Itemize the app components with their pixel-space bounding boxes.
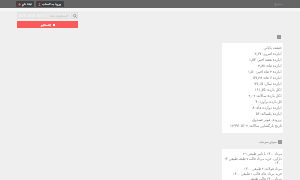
staticText: خرید مرداد های قالب ۱ طبیعی ۱۴۰۰	[232, 171, 282, 175]
staticText: جستجوی نماد	[50, 14, 68, 18]
staticText: کل بازده برآورد: ۴	[255, 99, 282, 104]
staticText: ورودی موثر صندوق:	[252, 117, 282, 122]
staticText: بازده سال: ۷۷٫۱۵٪	[254, 81, 282, 86]
button[interactable]: ثبت نام	[16, 1, 34, 7]
staticText: بازده دوازده ماه: ۸٪	[252, 105, 282, 110]
staticText: جستجو	[41, 23, 52, 27]
staticText: مرداد فولادی ۲ طبیعی ۱۴۰۰	[244, 166, 282, 170]
staticText: بازده یکساله: ۵۶٪	[255, 111, 282, 116]
staticText: صندوق	[274, 2, 283, 5]
staticText: تاریخ بازگشایی سالانه: ۱۳۹۹/۰۵/۰۲	[230, 123, 282, 128]
staticText: ۱۴۰۰	[274, 161, 282, 165]
staticText: قیمت پایانی:	[263, 45, 282, 50]
staticText: دارایی، خرید مرداد قالب ۷ طبقه طبیعی ۱۴	[224, 156, 282, 160]
button[interactable]: Search	[71, 12, 78, 19]
staticText: بازده ماه: ۳٫۸۸٪	[258, 63, 282, 68]
staticText: بازده ۶ ماه: ۵۷٫۲۸٪	[253, 75, 282, 80]
button[interactable]: جستجو	[17, 21, 78, 28]
staticText: سهام سرمایه	[259, 140, 277, 144]
button[interactable]: ورود به حساب	[36, 1, 64, 7]
button[interactable]: Filter	[27, 13, 36, 18]
staticText: ۲۹ مرداد ۱۴۰۰ با تاثیر طبیعی	[243, 151, 282, 155]
staticText: ورود به حساب	[42, 2, 62, 6]
button[interactable]: Filter	[18, 13, 27, 18]
staticText: کل بازدهٔ سالانه: ۲٫۰۲٪	[248, 93, 282, 98]
staticText: ثبت نام	[22, 2, 32, 6]
staticText: مرداد ۱۴۰۰ قالب طبیعی	[249, 176, 282, 180]
staticText: کل بازده: ۱۶۱٫۷۵٪	[254, 87, 282, 92]
staticText: بازدهٔ هفته اخیر: ۱٫۵۴٪	[249, 57, 282, 62]
staticText: بازدهٔ ۳ ماه اخیر: ۱٫۵۰٪	[247, 69, 282, 74]
button[interactable]: Filter	[17, 12, 70, 19]
staticText: بازده امروز: ۳٫۶۷٪	[254, 51, 282, 56]
button[interactable]: Filter	[36, 13, 45, 18]
